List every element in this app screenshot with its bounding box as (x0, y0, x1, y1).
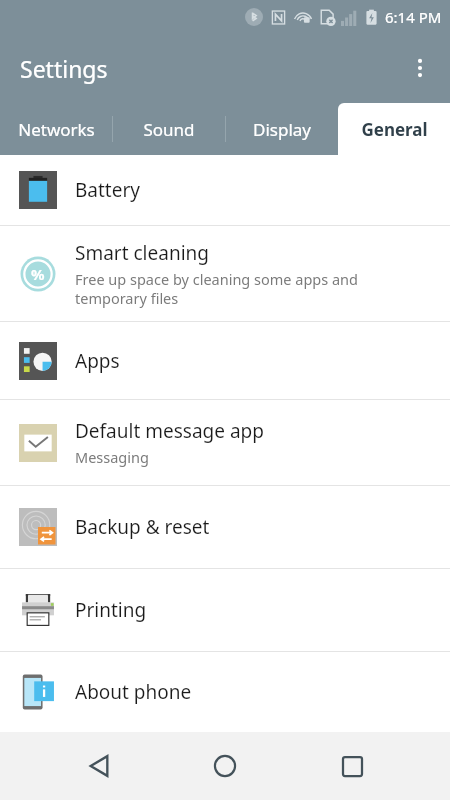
button[interactable]: Recent apps (324, 738, 380, 794)
button[interactable]: Apps (0, 322, 450, 399)
staticText: Backup & reset (75, 514, 210, 540)
button[interactable]: Battery (0, 155, 450, 225)
button[interactable]: Networks (0, 103, 112, 155)
staticText: About phone (75, 679, 192, 705)
button[interactable]: Back (71, 738, 127, 794)
button[interactable]: Backup & reset (0, 486, 450, 568)
button[interactable]: Sound (113, 103, 225, 155)
staticText: Free up space by cleaning some apps and … (75, 269, 358, 308)
staticText: Printing (75, 597, 147, 623)
button[interactable]: About phone (0, 652, 450, 732)
button[interactable]: Home (197, 738, 253, 794)
staticText: % (31, 264, 45, 284)
button[interactable]: More options (398, 46, 442, 90)
staticText: Networks (18, 118, 95, 141)
button[interactable]: General (338, 103, 450, 155)
staticText: General (361, 118, 428, 141)
button[interactable]: Default message app (0, 400, 450, 485)
staticText: Messaging (75, 447, 149, 467)
button[interactable]: Display (226, 103, 338, 155)
staticText: Settings (20, 53, 108, 84)
staticText: Sound (143, 118, 195, 141)
staticText: Smart cleaning (75, 240, 209, 266)
staticText: Display (253, 118, 311, 141)
button[interactable]: % (0, 226, 450, 321)
button[interactable]: Printing (0, 569, 450, 651)
staticText: Apps (75, 348, 120, 374)
staticText: 6:14 PM (385, 7, 442, 27)
staticText: Default message app (75, 418, 264, 444)
staticText: Battery (75, 177, 140, 203)
